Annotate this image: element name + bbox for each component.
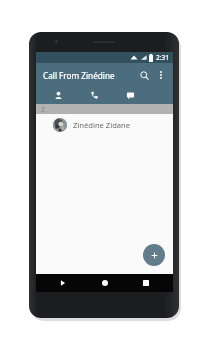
button[interactable]: Recent apps <box>131 274 161 292</box>
staticText: Call From Zinédine Zidane… <box>43 70 135 81</box>
button[interactable]: Add contact <box>143 244 165 266</box>
staticText: Zinédine Zidane <box>73 120 131 130</box>
button[interactable]: More options <box>153 67 169 83</box>
button[interactable]: Messages <box>112 87 148 104</box>
button[interactable]: Call history <box>76 87 112 104</box>
button[interactable]: Contacts <box>40 87 76 104</box>
button[interactable]: Back <box>48 274 78 292</box>
button[interactable]: Search <box>135 66 153 84</box>
button[interactable]: Home <box>90 274 120 292</box>
button[interactable]: Zinédine Zidane <box>36 114 173 136</box>
staticText: Z <box>41 104 46 114</box>
staticText: 2:31 <box>156 53 169 62</box>
